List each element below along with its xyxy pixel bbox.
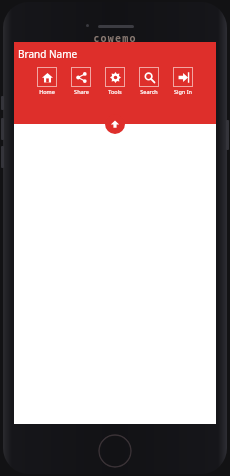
staticText: cowemo xyxy=(93,31,137,45)
button[interactable]: Sign In xyxy=(172,67,194,95)
staticText: Tools xyxy=(108,88,122,95)
staticText: Brand Name xyxy=(18,47,78,61)
staticText: Share xyxy=(74,88,89,95)
staticText: Search xyxy=(140,88,158,95)
button[interactable]: Search xyxy=(138,67,160,95)
button[interactable]: Tools xyxy=(104,67,126,95)
staticText: Sign In xyxy=(174,88,192,95)
button[interactable]: Share xyxy=(70,67,92,95)
button[interactable]: Home button xyxy=(98,434,132,468)
button[interactable]: Home xyxy=(36,67,58,95)
staticText: Home xyxy=(39,88,55,95)
button[interactable]: Scroll to top xyxy=(105,114,125,134)
